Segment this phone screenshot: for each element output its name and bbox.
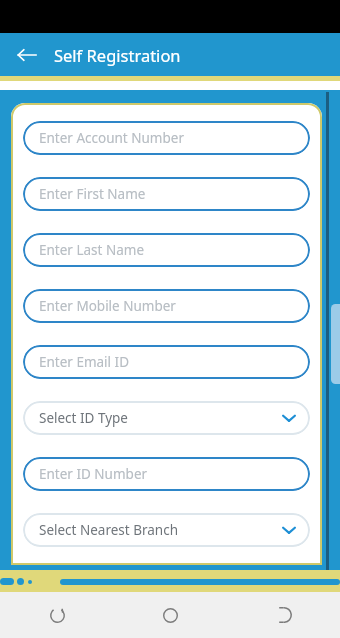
button[interactable]: Select ID Type [23,401,310,435]
button[interactable]: Select Nearest Branch [23,513,310,547]
button[interactable]: Enter Mobile Number [23,289,310,323]
staticText: Enter Mobile Number [39,297,176,315]
button[interactable]: Enter ID Number [23,457,310,491]
button[interactable]: Back [227,592,340,638]
staticText: Select ID Type [39,409,282,427]
staticText: Enter First Name [39,185,146,203]
staticText: Enter Account Number [39,129,184,147]
staticText: Enter Last Name [39,241,144,259]
staticText: Self Registration [54,44,181,66]
staticText: Enter Email ID [39,353,130,371]
button[interactable]: Enter First Name [23,177,310,211]
button[interactable]: Drawer handle [331,304,340,384]
button[interactable]: Home [114,592,227,638]
button[interactable]: Back [10,38,44,72]
button[interactable]: Enter Email ID [23,345,310,379]
button[interactable]: Enter Last Name [23,233,310,267]
staticText: Enter ID Number [39,465,148,483]
staticText: Select Nearest Branch [39,521,282,539]
button[interactable]: Enter Account Number [23,121,310,155]
button[interactable]: Recent apps [0,592,114,638]
